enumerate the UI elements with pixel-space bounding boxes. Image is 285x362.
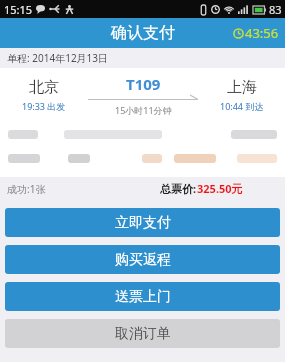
staticText: 325.50元 (197, 181, 243, 196)
staticText: 上海 (227, 78, 257, 97)
staticText: 购买返程 (115, 251, 171, 269)
button[interactable]: 购买返程 (5, 245, 280, 274)
staticText: 19:33 出发 (22, 100, 66, 112)
staticText: 43:56 (245, 24, 279, 42)
staticText: 北京 (29, 78, 59, 97)
button[interactable]: 送票上门 (5, 282, 280, 311)
staticText: 取消订单 (115, 325, 171, 343)
staticText: 总票价: (160, 181, 197, 196)
staticText: 单程: 2014年12月13日 (7, 51, 109, 65)
staticText: 成功:1张 (7, 182, 46, 196)
staticText: 送票上门 (115, 288, 171, 306)
staticText: 15小时11分钟 (115, 104, 172, 116)
staticText: 83 (269, 2, 282, 17)
staticText: 10:44 到达 (220, 100, 264, 112)
staticText: 15:15 (4, 2, 33, 17)
staticText: 立即支付 (115, 214, 171, 232)
staticText: 确认支付 (111, 23, 175, 43)
button[interactable]: 取消订单 (5, 319, 280, 348)
button[interactable]: 立即支付 (5, 208, 280, 237)
staticText: T109 (126, 74, 161, 94)
button[interactable]: Payment countdown 43:56 (233, 24, 279, 42)
